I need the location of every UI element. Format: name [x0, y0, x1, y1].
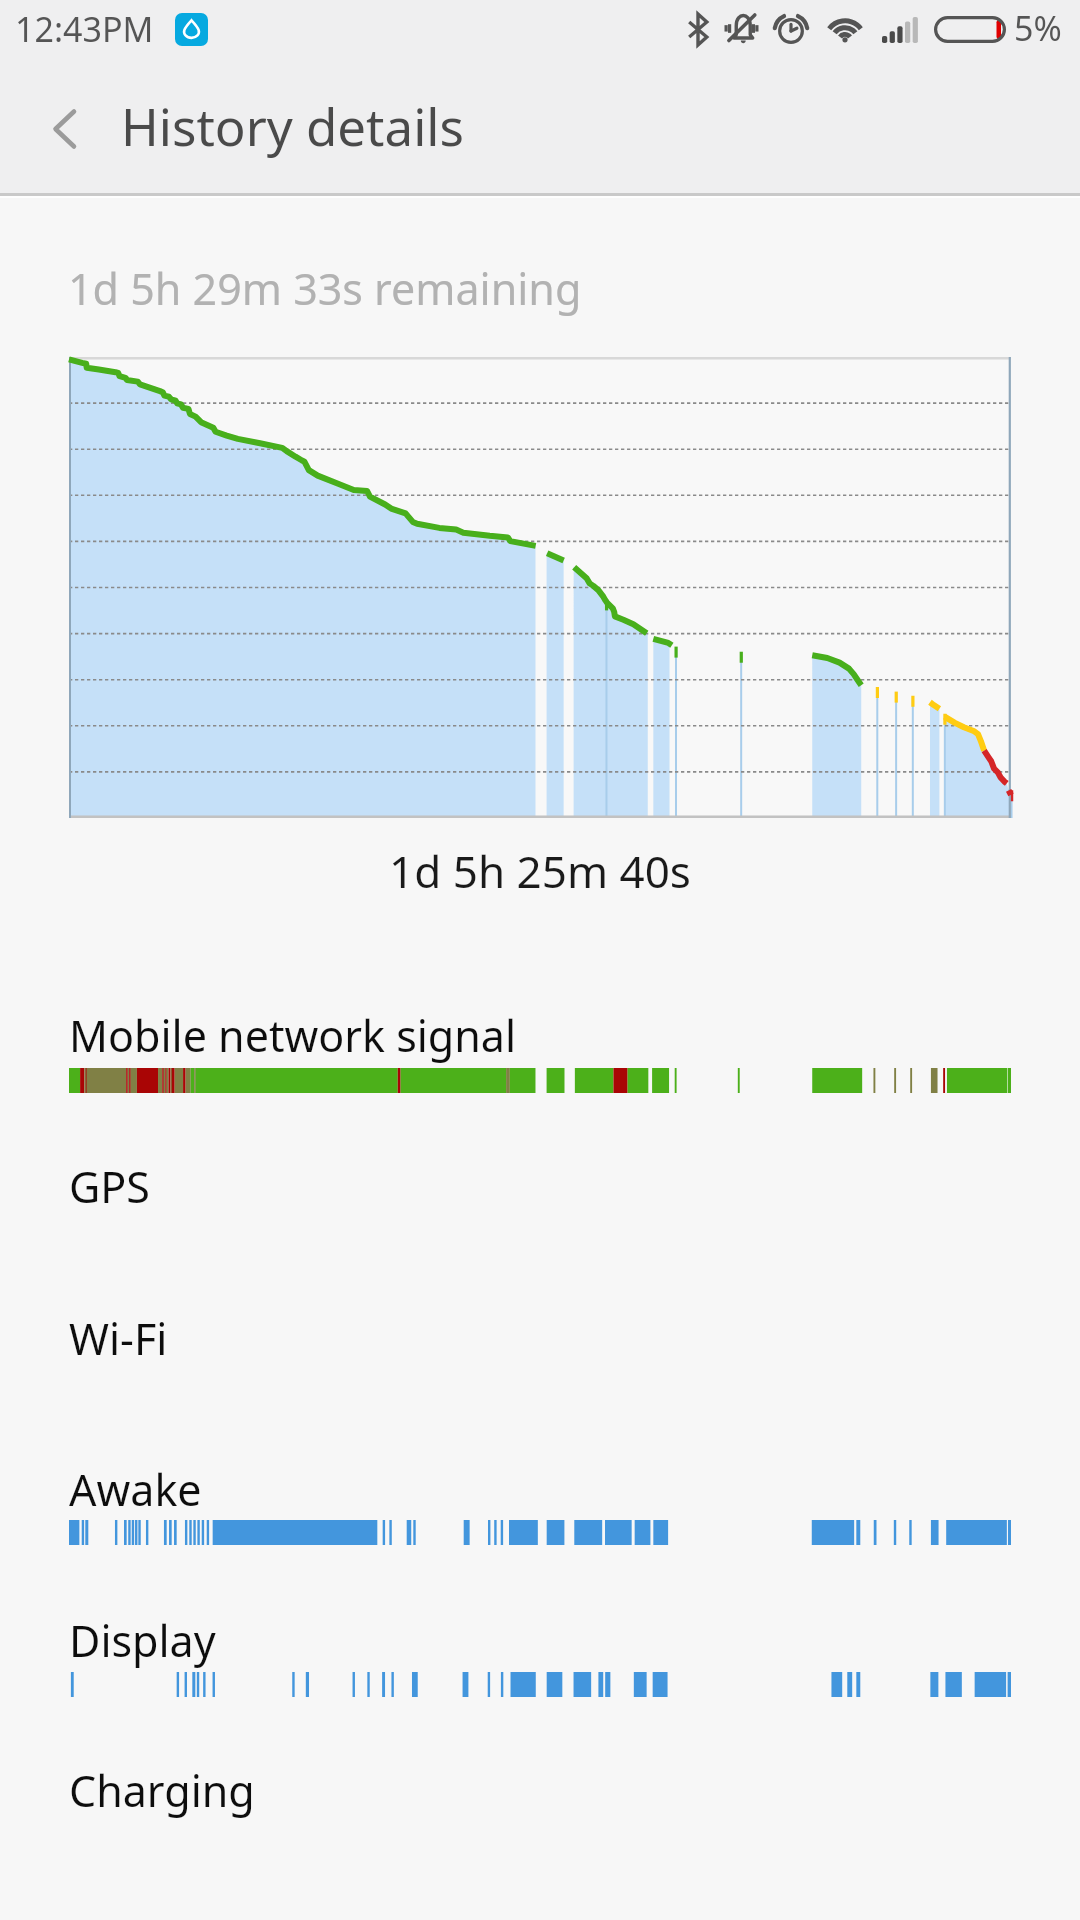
button[interactable]: Display: [0, 1595, 1080, 1746]
button[interactable]: Charging: [0, 1745, 1080, 1896]
button[interactable]: Mobile network signal: [0, 990, 1080, 1141]
staticText: Mobile network signal: [69, 1006, 517, 1065]
button[interactable]: GPS: [0, 1141, 1080, 1292]
staticText: Wi-Fi: [69, 1309, 168, 1368]
staticText: GPS: [69, 1157, 150, 1216]
button[interactable]: Back: [10, 68, 118, 188]
staticText: 5%: [1014, 5, 1062, 51]
staticText: 1d 5h 25m 40s: [0, 841, 1080, 901]
staticText: Awake: [69, 1460, 202, 1519]
staticText: 12:43PM: [15, 6, 154, 52]
staticText: 1d 5h 29m 33s remaining: [68, 259, 582, 318]
button[interactable]: Awake: [0, 1444, 1080, 1595]
staticText: Display: [69, 1611, 216, 1670]
button[interactable]: Wi-Fi: [0, 1293, 1080, 1444]
staticText: History details: [121, 91, 464, 160]
staticText: Charging: [69, 1761, 255, 1820]
